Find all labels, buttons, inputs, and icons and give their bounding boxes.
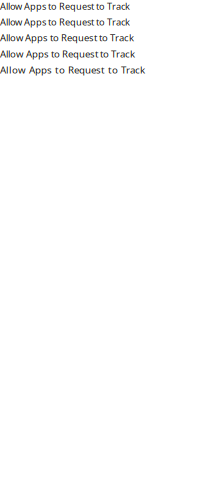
staticText: Allow Apps to Request to Track — [0, 31, 134, 44]
staticText: Allow Apps to Request to Track — [0, 0, 130, 12]
staticText: Allow Apps to Request to Track — [0, 47, 135, 60]
staticText: Allow Apps to Request to Track — [0, 15, 130, 28]
staticText: Allow Apps to Request to Track — [0, 63, 145, 76]
